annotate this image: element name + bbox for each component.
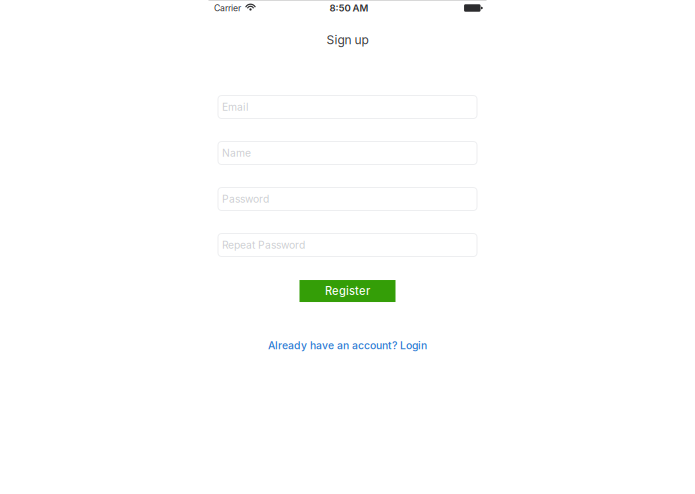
staticText: Repeat Password [222,239,305,251]
staticText: Sign up [326,32,368,47]
button[interactable]: Register [299,280,395,302]
staticText: Register [325,284,370,298]
staticText: Email [222,101,249,113]
staticText: 8:50 AM [329,2,368,14]
staticText: Carrier [214,3,241,13]
staticText: Password [222,193,269,205]
staticText: Already have an account? Login [268,339,427,352]
staticText: Name [222,147,251,159]
button[interactable]: Already have an account? Login [247,337,447,353]
